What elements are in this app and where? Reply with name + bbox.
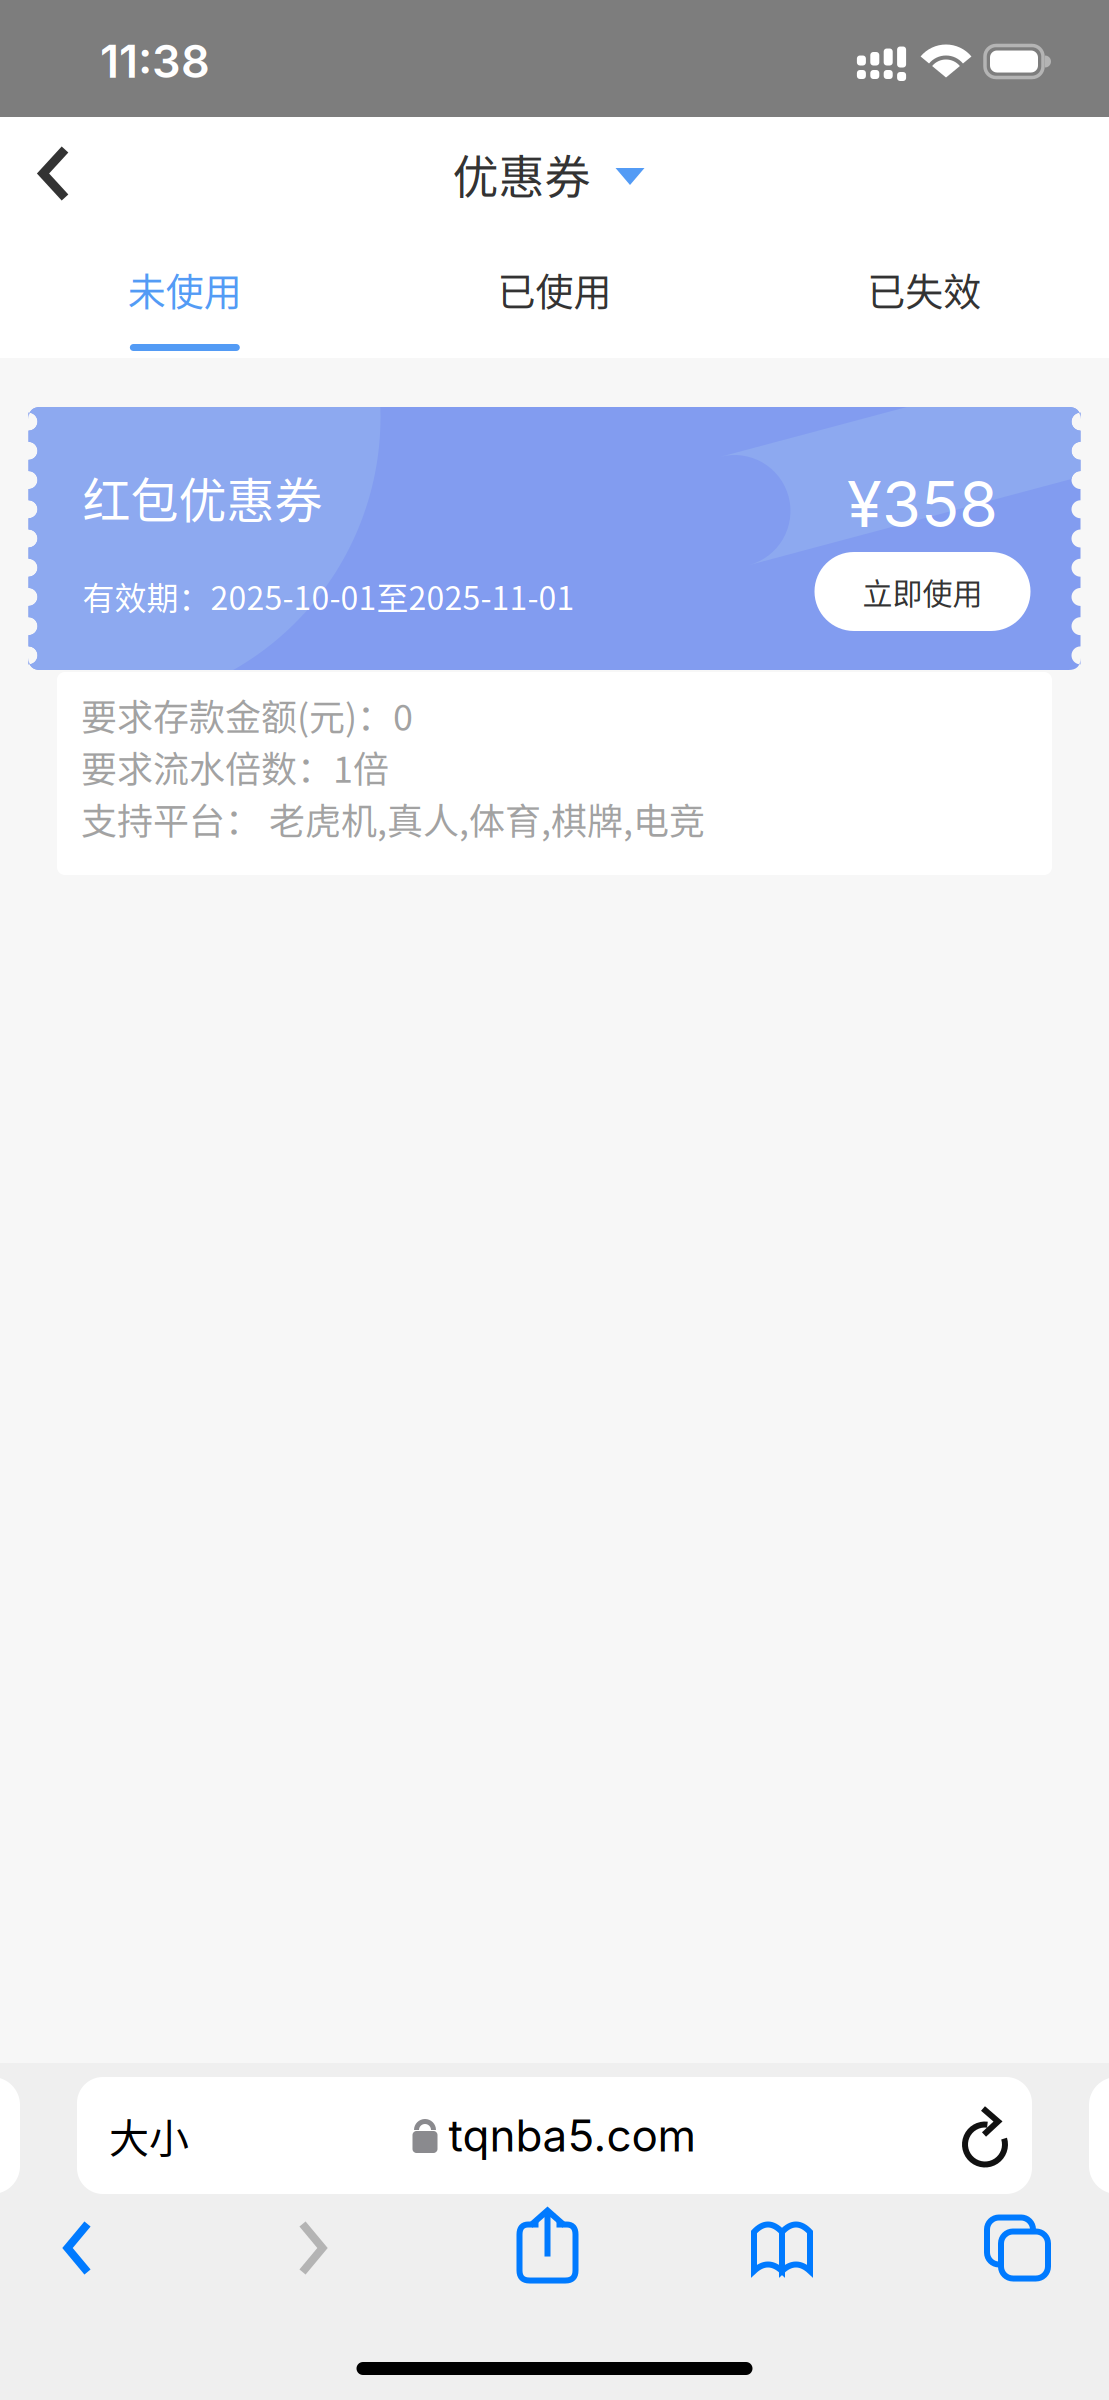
staticText: 要求流水倍数：1倍 bbox=[81, 741, 389, 793]
button[interactable]: 已失效 bbox=[739, 230, 1109, 358]
staticText: 要求存款金额(元)：0 bbox=[81, 689, 413, 741]
staticText: 已失效 bbox=[867, 261, 981, 316]
button[interactable]: Back bbox=[0, 2196, 195, 2300]
staticText: tqnba5.com bbox=[448, 2109, 696, 2162]
staticText: 未使用 bbox=[128, 261, 242, 316]
staticText: 红包优惠券 bbox=[82, 462, 322, 532]
button[interactable]: Bookmarks bbox=[665, 2196, 900, 2300]
staticText: 已使用 bbox=[497, 261, 611, 316]
staticText: ¥358 bbox=[847, 466, 998, 542]
button[interactable]: Back bbox=[0, 117, 108, 230]
staticText: 11:38 bbox=[100, 34, 210, 89]
staticText: 大小 bbox=[109, 2106, 189, 2164]
button[interactable]: Forward bbox=[195, 2196, 430, 2300]
staticText: 优惠券 bbox=[452, 140, 590, 207]
button[interactable]: 未使用 bbox=[0, 230, 370, 358]
staticText: 支持平台： 老虎机,真人,体育,棋牌,电竞 bbox=[81, 793, 705, 845]
button[interactable]: 已使用 bbox=[370, 230, 739, 358]
button[interactable]: Tabs bbox=[900, 2196, 1109, 2300]
button[interactable]: Address: tqnba5.com bbox=[77, 2077, 1032, 2194]
button[interactable]: Share bbox=[430, 2196, 665, 2300]
button[interactable]: 立即使用 bbox=[814, 552, 1030, 631]
staticText: 立即使用 bbox=[862, 570, 982, 613]
staticText: 有效期：2025-10-01至2025-11-01 bbox=[82, 573, 574, 619]
